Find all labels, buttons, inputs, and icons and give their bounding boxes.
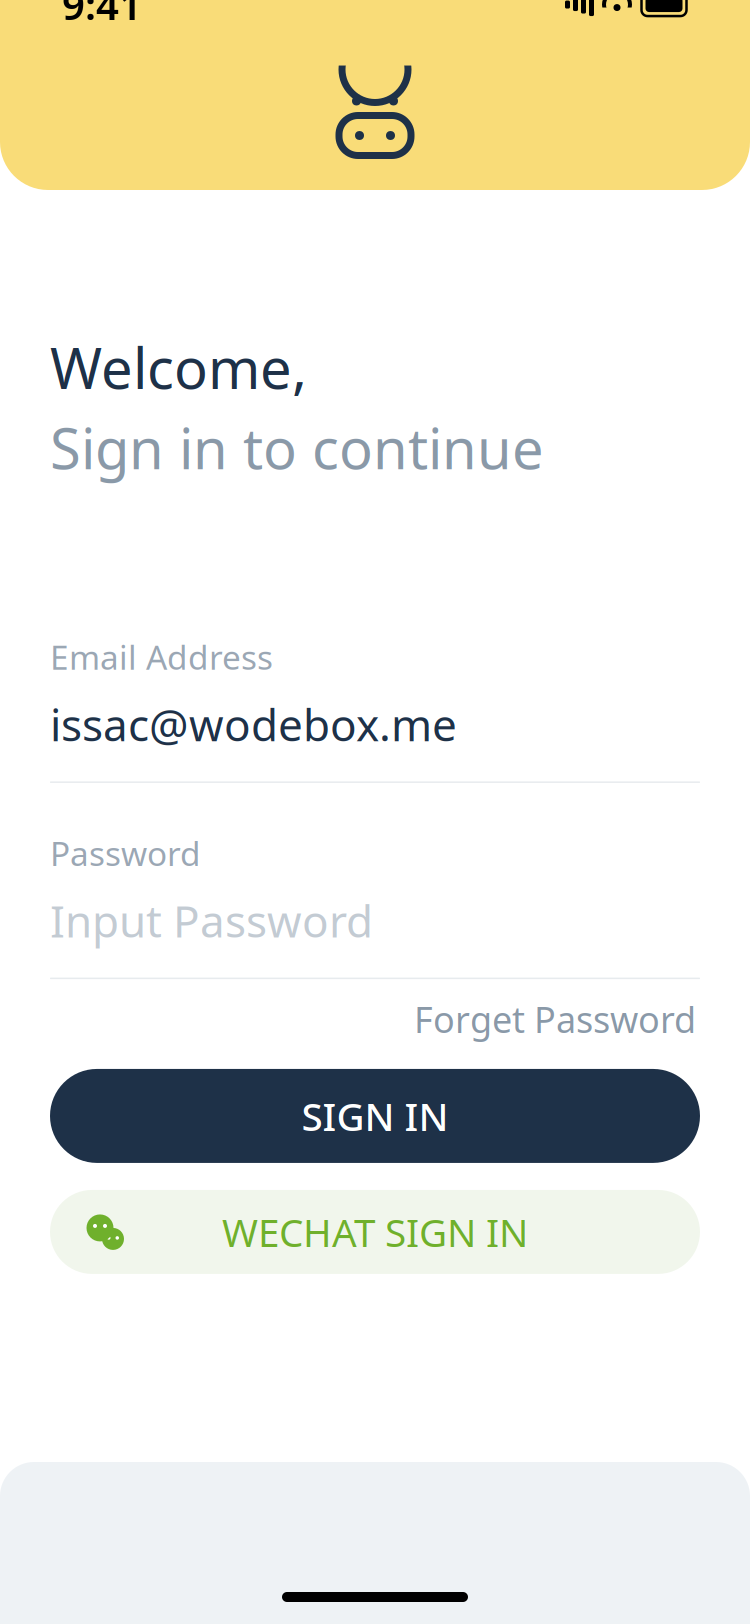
staticText: SIGN IN: [301, 1090, 448, 1142]
staticText: Password: [50, 831, 201, 875]
staticText: issac@wodebox.me: [50, 695, 457, 753]
staticText: Forget Password: [414, 995, 696, 1043]
button[interactable]: SIGN IN: [50, 1069, 700, 1163]
staticText: Welcome,: [50, 330, 307, 404]
staticText: Input Password: [50, 891, 373, 950]
staticText: WECHAT SIGN IN: [222, 1206, 528, 1258]
button[interactable]: Forget Password: [410, 987, 700, 1051]
button[interactable]: WECHAT SIGN IN: [50, 1190, 700, 1274]
staticText: Sign in to continue: [50, 410, 544, 485]
staticText: 9:41: [62, 0, 142, 31]
staticText: Email Address: [50, 635, 273, 679]
